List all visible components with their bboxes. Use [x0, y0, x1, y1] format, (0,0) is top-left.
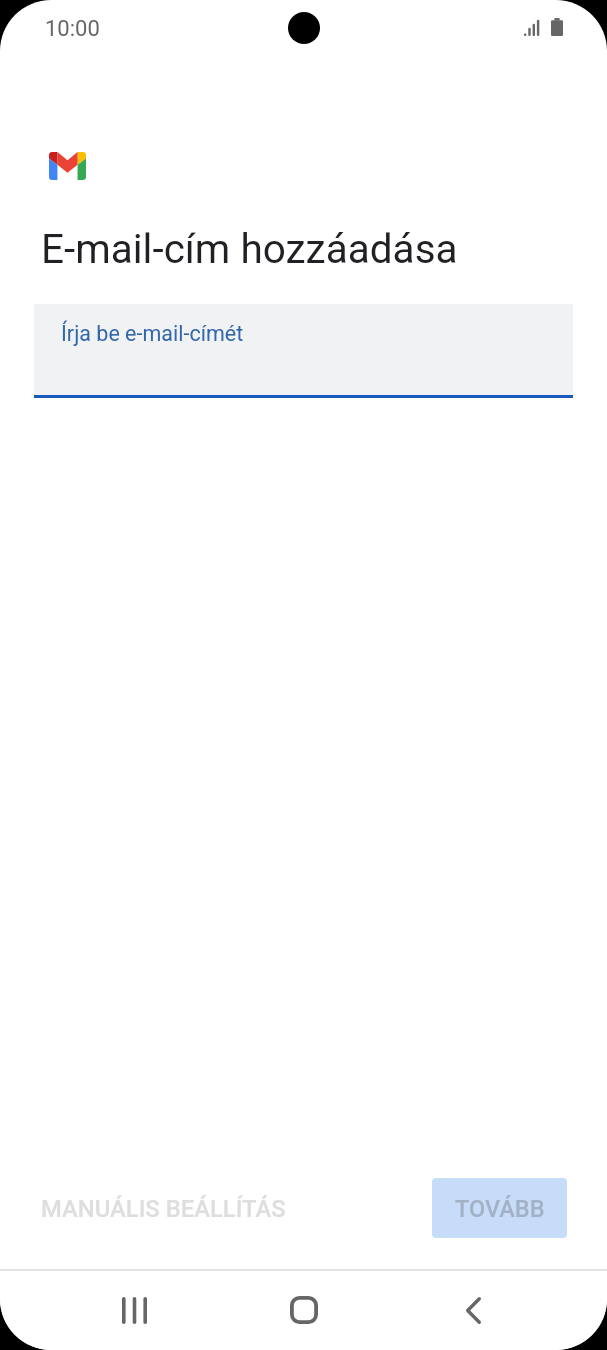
- staticText: Írja be e-mail-címét: [61, 321, 244, 346]
- staticText: TOVÁBB: [455, 1195, 545, 1223]
- button[interactable]: Home: [264, 1279, 344, 1341]
- button[interactable]: Írja be e-mail-címét: [34, 304, 573, 395]
- button[interactable]: TOVÁBB: [432, 1178, 567, 1238]
- staticText: 10:00: [45, 16, 100, 42]
- staticText: MANUÁLIS BEÁLLÍTÁS: [41, 1195, 286, 1223]
- button[interactable]: Back: [433, 1279, 513, 1341]
- button[interactable]: MANUÁLIS BEÁLLÍTÁS: [29, 1185, 298, 1233]
- button[interactable]: Recent apps: [94, 1279, 174, 1341]
- staticText: E-mail-cím hozzáadása: [41, 225, 458, 272]
